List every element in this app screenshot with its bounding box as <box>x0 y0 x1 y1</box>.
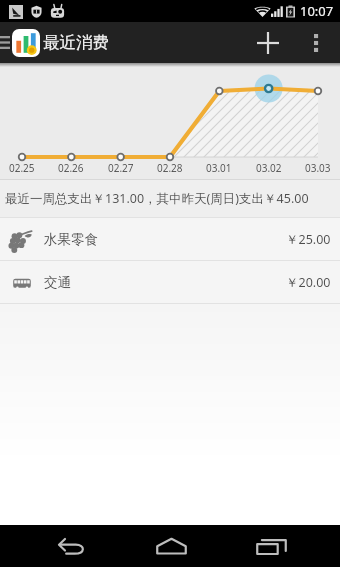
button[interactable]: Back <box>20 525 121 567</box>
staticText: 交通 <box>44 274 71 291</box>
staticText: 03.01 <box>206 161 232 175</box>
button[interactable]: Add <box>242 22 293 63</box>
staticText: ￥20.00 <box>286 274 331 291</box>
staticText: ￥25.00 <box>286 231 331 248</box>
staticText: 最近消费 <box>43 32 109 53</box>
button[interactable]: More options <box>293 22 340 63</box>
staticText: 10:07 <box>300 2 334 20</box>
button[interactable]: Recent apps <box>221 525 321 567</box>
staticText: 03.03 <box>305 161 331 175</box>
button[interactable]: 水果零食 <box>0 218 340 260</box>
staticText: 02.28 <box>157 161 183 175</box>
staticText: 03.02 <box>256 161 282 175</box>
staticText: 02.25 <box>9 161 35 175</box>
staticText: 水果零食 <box>44 231 98 248</box>
button[interactable]: 交通 <box>0 261 340 303</box>
button[interactable]: Home <box>121 525 221 567</box>
button[interactable]: Navigation drawer <box>0 22 10 63</box>
staticText: 02.27 <box>108 161 134 175</box>
staticText: 02.26 <box>58 161 84 175</box>
staticText: 最近一周总支出￥131.00，其中昨天(周日)支出￥45.00 <box>5 190 309 207</box>
